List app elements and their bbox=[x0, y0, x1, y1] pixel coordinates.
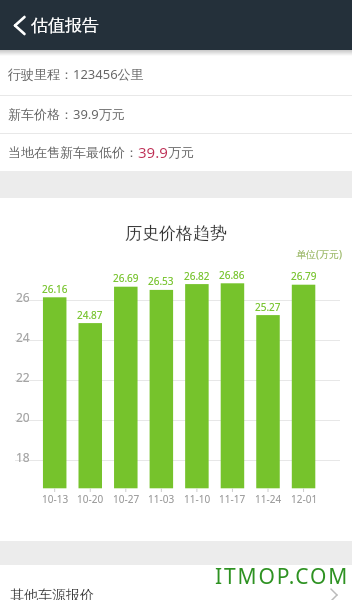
staticText: 26.86 bbox=[219, 268, 245, 281]
staticText: 万元 bbox=[168, 144, 194, 160]
staticText: 10-13 bbox=[42, 492, 69, 505]
staticText: 当地在售新车最低价： bbox=[8, 144, 138, 160]
button[interactable]: 行驶里程：123456公里 bbox=[0, 55, 352, 93]
staticText: 26.79 bbox=[291, 269, 317, 282]
staticText: 18 bbox=[16, 449, 30, 464]
staticText: 10-27 bbox=[113, 492, 140, 505]
button[interactable]: 其他车源报价 bbox=[0, 565, 352, 600]
staticText: 39.9 bbox=[138, 142, 168, 162]
button[interactable]: 新车价格：39.9万元 bbox=[0, 95, 352, 133]
staticText: 20 bbox=[16, 409, 30, 424]
staticText: 单位(万元) bbox=[296, 247, 342, 261]
staticText: 11-03 bbox=[148, 492, 175, 505]
staticText: 26.16 bbox=[42, 282, 68, 295]
staticText: 24.87 bbox=[77, 308, 103, 321]
staticText: 24 bbox=[16, 329, 30, 344]
button[interactable]: 当地在售新车最低价： bbox=[0, 133, 352, 171]
staticText: 11-17 bbox=[219, 492, 246, 505]
staticText: 26.69 bbox=[113, 271, 139, 284]
staticText: 估值报告 bbox=[31, 15, 99, 36]
staticText: 26.53 bbox=[148, 274, 174, 287]
staticText: ITMOP.COM bbox=[215, 562, 350, 591]
staticText: 行驶里程：123456公里 bbox=[8, 65, 144, 83]
staticText: 25.27 bbox=[255, 300, 281, 313]
staticText: 其他车源报价 bbox=[10, 587, 94, 600]
staticText: 10-20 bbox=[77, 492, 104, 505]
staticText: 26 bbox=[16, 289, 30, 304]
staticText: 11-24 bbox=[255, 492, 282, 505]
staticText: 22 bbox=[16, 369, 30, 384]
staticText: 26.82 bbox=[184, 269, 210, 282]
button[interactable]: 估值报告 bbox=[0, 0, 352, 50]
staticText: 新车价格：39.9万元 bbox=[8, 105, 125, 123]
staticText: 12-01 bbox=[291, 492, 318, 505]
staticText: 历史价格趋势 bbox=[125, 223, 227, 244]
staticText: 11-10 bbox=[184, 492, 211, 505]
